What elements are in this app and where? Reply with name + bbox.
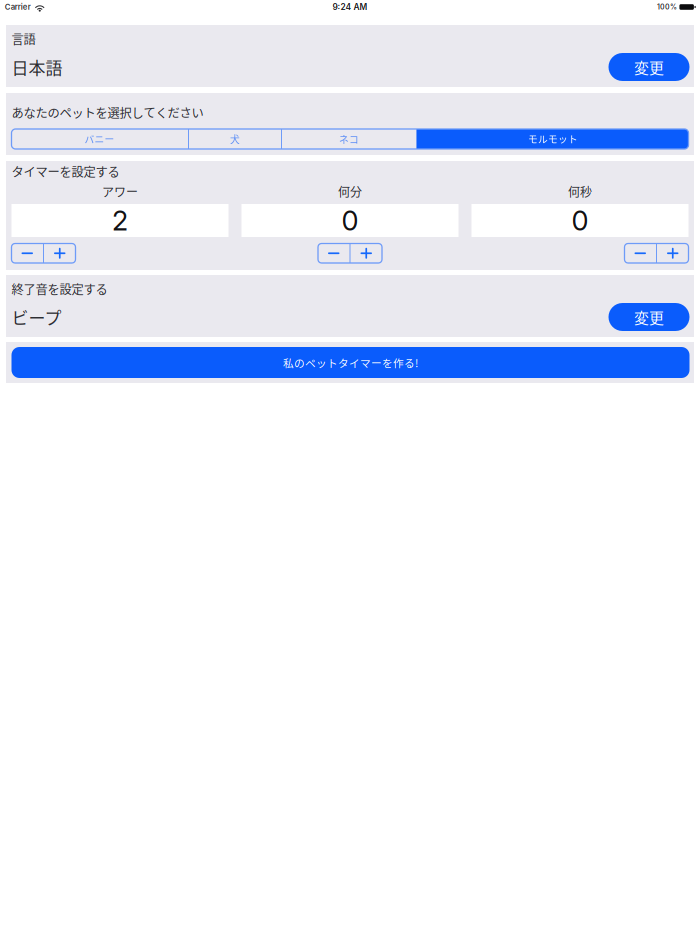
staticText: 2	[112, 204, 128, 237]
button[interactable]: 変更	[608, 303, 689, 331]
staticText: 私のペットタイマーを作る!	[283, 355, 418, 370]
button[interactable]: Decrease	[318, 243, 349, 263]
staticText: バニー	[84, 132, 114, 146]
button[interactable]: 変更	[608, 53, 689, 81]
staticText: アワー	[102, 183, 138, 200]
button[interactable]: バニー	[11, 129, 188, 149]
staticText: 何分	[338, 183, 362, 200]
button[interactable]: ネコ	[282, 129, 416, 149]
staticText: 何秒	[568, 183, 592, 200]
staticText: 犬	[230, 132, 240, 146]
button[interactable]: Increase	[657, 243, 688, 263]
staticText: 変更	[634, 56, 664, 78]
staticText: 変更	[634, 306, 664, 328]
staticText: ビープ	[11, 305, 61, 329]
staticText: 0	[341, 204, 358, 237]
button[interactable]: 犬	[189, 129, 281, 149]
button[interactable]: Decrease	[11, 243, 43, 263]
staticText: 9:24 AM	[332, 2, 367, 12]
staticText: Carrier	[5, 2, 31, 12]
staticText: モルモット	[528, 132, 578, 146]
button[interactable]: モルモット	[417, 129, 689, 149]
button[interactable]: Increase	[350, 243, 382, 263]
staticText: ネコ	[339, 132, 359, 146]
button[interactable]: Decrease	[624, 243, 656, 263]
staticText: 日本語	[11, 55, 62, 79]
staticText: 終了音を設定する	[11, 280, 107, 298]
staticText: あなたのペットを選択してください	[11, 104, 203, 121]
staticText: 0	[571, 204, 588, 237]
staticText: タイマーを設定する	[11, 163, 119, 180]
staticText: 100%	[657, 3, 677, 11]
button[interactable]: Increase	[44, 243, 75, 263]
button[interactable]: 私のペットタイマーを作る!	[11, 347, 689, 378]
staticText: 言語	[11, 30, 35, 48]
